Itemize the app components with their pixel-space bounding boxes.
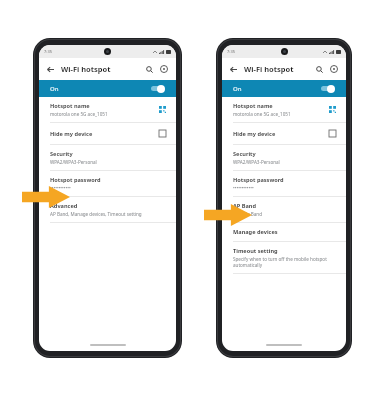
staticText: •••••••••••• [233,185,254,191]
button[interactable]: Search [313,63,325,75]
button[interactable]: Hotspot password [39,171,176,196]
button[interactable]: Hotspot name [222,97,346,122]
button[interactable]: Back [45,64,56,75]
staticText: Timeout setting [233,247,278,255]
staticText: Hotspot password [233,176,284,184]
staticText: Hide my device [233,130,276,138]
button[interactable]: Timeout setting [222,242,346,273]
button[interactable]: On [39,80,176,97]
staticText: AP Band [233,202,257,210]
staticText: On [50,85,59,93]
staticText: Hotspot password [50,176,101,184]
staticText: Hide my device [50,130,93,138]
staticText: motorola one 5G ace_1051 [50,111,108,117]
staticText: 7:35 [44,49,52,54]
staticText: Advanced [50,202,78,210]
staticText: Wi-Fi hotspot [244,64,294,74]
button[interactable]: Back [228,64,239,75]
button[interactable]: QR code [327,104,338,115]
staticText: WPA2/WPA3-Personal [233,159,280,165]
staticText: Hotspot name [233,102,273,110]
staticText: 2.4 GHz Band [233,211,263,217]
staticText: •••••••••••• [50,185,71,191]
button[interactable]: Hide my device checkbox [157,128,168,139]
button[interactable]: Hotspot name [39,97,176,122]
button[interactable]: Help [158,63,170,75]
button[interactable]: Hide my device [222,123,346,144]
button[interactable]: Security [39,145,176,170]
button[interactable]: Hotspot password [222,171,346,196]
staticText: Security [50,150,73,158]
staticText: Security [233,150,256,158]
staticText: motorola one 5G ace_1051 [233,111,291,117]
staticText: Manage devices [233,228,278,236]
button[interactable]: Security [222,145,346,170]
button[interactable]: Advanced [39,197,176,222]
staticText: Hotspot name [50,102,90,110]
staticText: Specify when to turn off the mobile hots… [233,256,338,268]
button[interactable]: Manage devices [222,223,346,241]
staticText: Wi-Fi hotspot [61,64,111,74]
staticText: On [233,85,242,93]
button[interactable]: Help [328,63,340,75]
button[interactable]: On [222,80,346,97]
button[interactable]: AP Band [222,197,346,222]
button[interactable]: Search [143,63,155,75]
staticText: AP Band, Manage devices, Timeout setting [50,211,142,217]
button[interactable]: Hide my device [39,123,176,144]
button[interactable]: Hide my device checkbox [327,128,338,139]
staticText: 7:35 [227,49,235,54]
staticText: WPA2/WPA3-Personal [50,159,97,165]
button[interactable]: QR code [157,104,168,115]
